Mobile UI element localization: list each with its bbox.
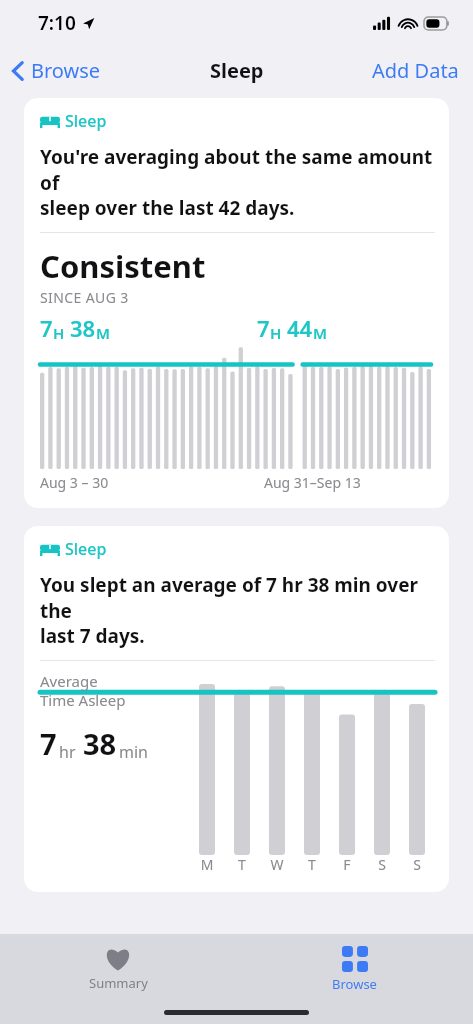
staticText: hr	[59, 741, 76, 763]
staticText: 7	[257, 313, 270, 343]
staticText: T	[234, 855, 250, 874]
staticText: M	[199, 855, 215, 874]
staticText: H	[270, 323, 282, 343]
button[interactable]: Browse	[236, 942, 473, 997]
staticText: SINCE AUG 3	[40, 288, 129, 307]
staticText: Average Time Asleep	[40, 671, 126, 710]
staticText: min	[119, 741, 148, 763]
staticText: M	[313, 323, 327, 343]
button[interactable]: Sleep	[24, 526, 449, 892]
button[interactable]: Add Data	[358, 51, 473, 90]
staticText: Browse	[332, 975, 377, 993]
button[interactable]: Summary	[0, 942, 236, 996]
staticText: You're averaging about the same amount o…	[40, 144, 435, 220]
staticText: Add Data	[372, 57, 459, 84]
staticText: Sleep	[65, 538, 107, 560]
button[interactable]: Browse	[0, 51, 111, 90]
staticText: 7	[40, 724, 57, 763]
staticText: F	[339, 855, 355, 874]
staticText: H	[53, 323, 65, 343]
staticText: S	[409, 855, 425, 874]
staticText: Aug 3 – 30	[40, 473, 109, 492]
staticText: Sleep	[210, 57, 264, 84]
staticText: Summary	[89, 974, 148, 992]
staticText: You slept an average of 7 hr 38 min over…	[40, 572, 435, 648]
staticText: 44	[287, 313, 313, 343]
staticText: Aug 31–Sep 13	[264, 473, 361, 492]
staticText: 38	[70, 313, 96, 343]
staticText: Sleep	[65, 110, 107, 132]
staticText: Browse	[31, 57, 101, 84]
staticText: Consistent	[40, 245, 206, 287]
staticText: M	[96, 323, 110, 343]
staticText: 7	[40, 313, 53, 343]
staticText: 38	[83, 724, 117, 763]
button[interactable]: Sleep	[24, 98, 449, 508]
staticText: T	[304, 855, 320, 874]
staticText: 7:10	[38, 10, 76, 36]
staticText: S	[374, 855, 390, 874]
staticText: W	[269, 855, 285, 874]
